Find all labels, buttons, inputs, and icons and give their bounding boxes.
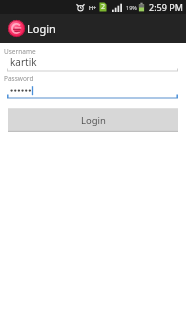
staticText: H+ xyxy=(89,4,97,11)
staticText: Password xyxy=(4,74,34,83)
staticText: Login xyxy=(81,114,106,127)
staticText: Username xyxy=(4,47,36,56)
button[interactable]: Login xyxy=(8,108,178,132)
button[interactable]: Password field xyxy=(4,71,182,100)
staticText: kartik xyxy=(10,55,37,69)
staticText: 19% xyxy=(126,4,137,11)
staticText: 2:59 PM xyxy=(149,1,183,13)
other: App icon xyxy=(8,20,25,37)
staticText: 2 xyxy=(101,2,106,12)
staticText: Login xyxy=(27,21,56,36)
button[interactable]: Username field xyxy=(4,44,182,73)
